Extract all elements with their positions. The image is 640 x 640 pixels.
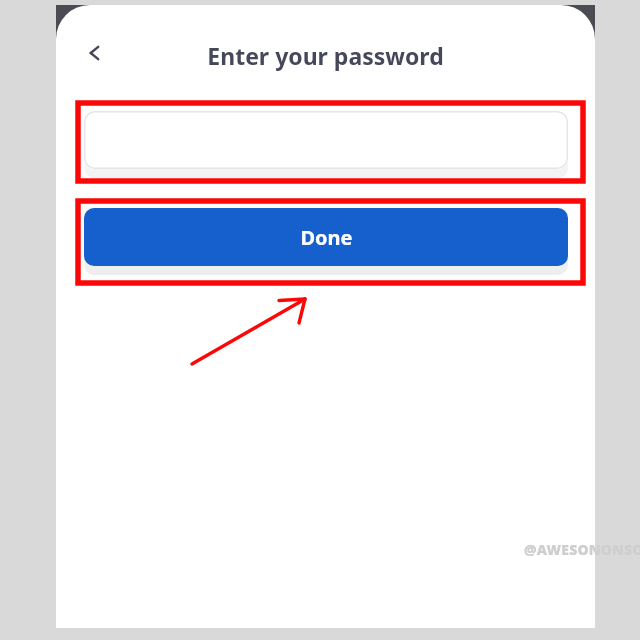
button[interactable]: Back	[70, 27, 122, 79]
staticText: Enter your password	[207, 40, 444, 71]
staticText: Done	[300, 224, 353, 251]
staticText: @AWESONONSO	[524, 540, 640, 559]
button[interactable]	[84, 111, 568, 169]
button[interactable]: Done	[84, 208, 568, 266]
